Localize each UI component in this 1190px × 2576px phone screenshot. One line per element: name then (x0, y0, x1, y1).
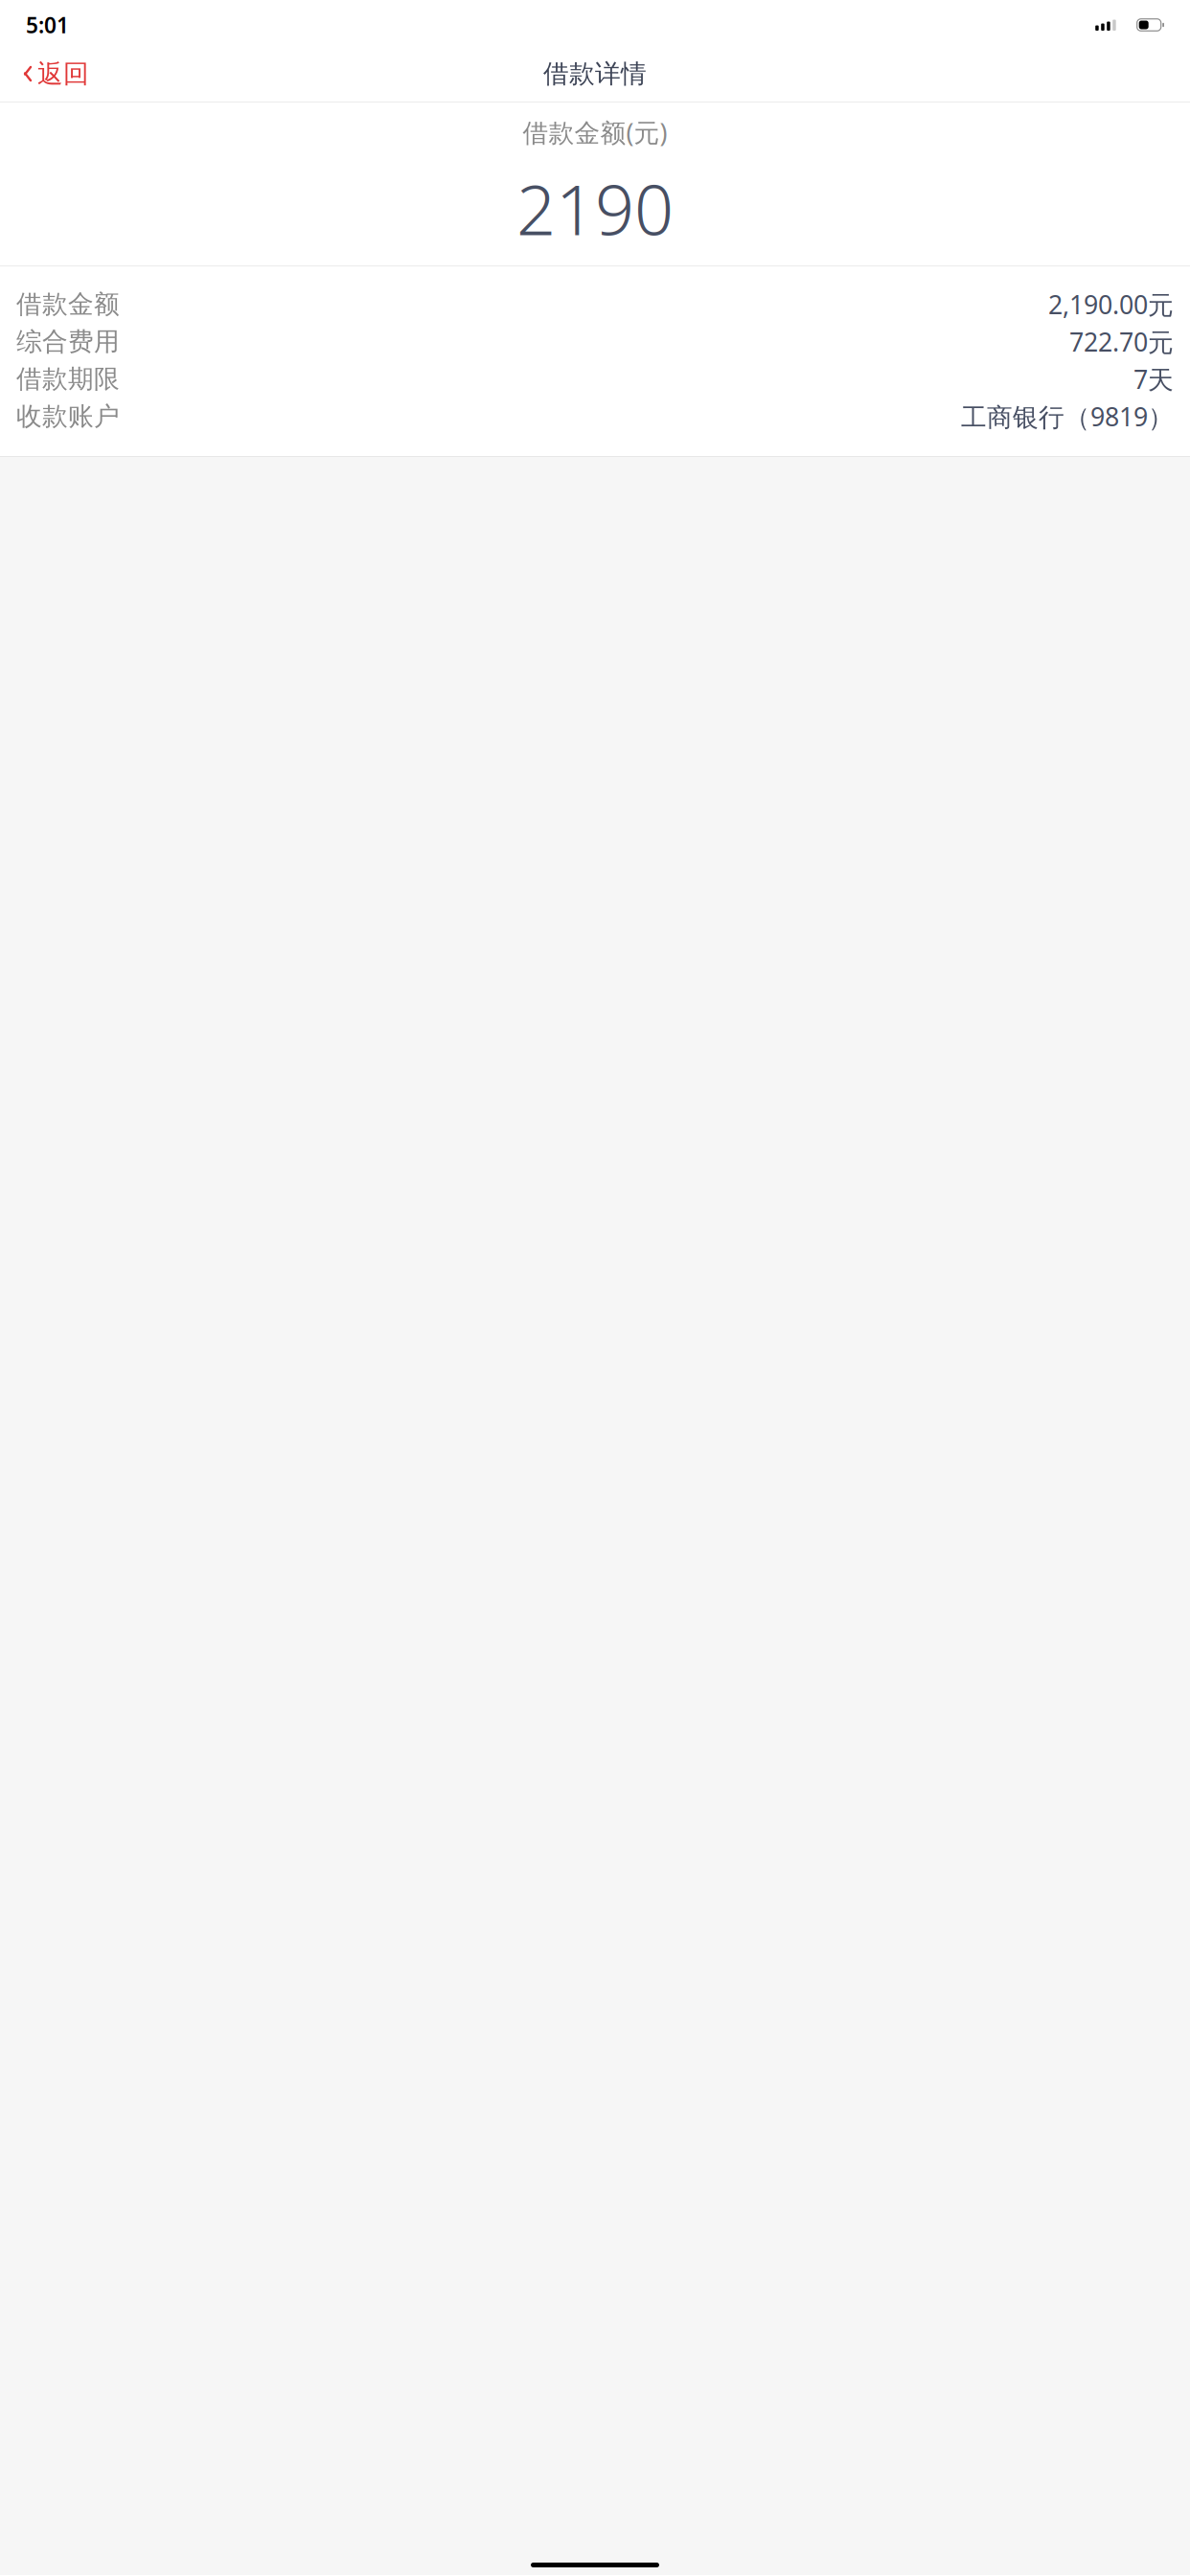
staticText: 借款金额 (16, 289, 120, 320)
staticText: 借款详情 (543, 58, 647, 89)
staticText: 综合费用 (16, 326, 120, 357)
staticText: 借款金额(元) (523, 115, 667, 149)
staticText: 返回 (37, 58, 89, 89)
staticText: 2,190.00元 (1048, 287, 1174, 321)
staticText: 2190 (516, 163, 674, 254)
staticText: 5:01 (26, 10, 69, 39)
staticText: 722.70元 (1069, 325, 1174, 359)
staticText: 工商银行（9819） (961, 399, 1174, 433)
staticText: 借款期限 (16, 363, 120, 395)
button[interactable]: 返回 (6, 50, 103, 97)
staticText: 7天 (1133, 362, 1174, 396)
staticText: 收款账户 (16, 401, 120, 432)
